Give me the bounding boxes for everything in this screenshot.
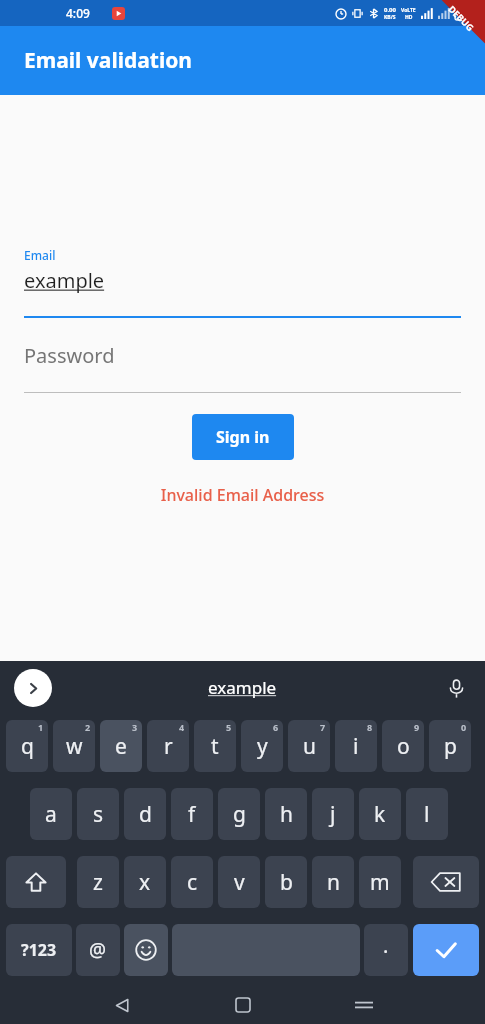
staticText: e (115, 732, 127, 761)
button[interactable]: h (265, 788, 307, 840)
button[interactable]: . (364, 924, 408, 976)
staticText: . (383, 932, 389, 959)
button[interactable]: o (382, 720, 424, 772)
button[interactable]: Emoji (124, 924, 168, 976)
staticText: 0.00 (384, 6, 396, 14)
staticText: Invalid Email Address (0, 484, 485, 506)
staticText: 9 (414, 721, 420, 733)
staticText: 2 (85, 721, 91, 733)
staticText: j (330, 800, 336, 829)
button[interactable]: r (147, 720, 189, 772)
staticText: g (233, 800, 246, 829)
staticText: HD (405, 14, 413, 21)
button[interactable]: u (288, 720, 330, 772)
staticText: k (374, 800, 386, 829)
staticText: 7 (320, 721, 326, 733)
staticText: n (327, 868, 340, 897)
staticText: 6 (273, 721, 279, 733)
button[interactable]: Home (226, 988, 260, 1022)
staticText: DEBUG (446, 3, 477, 33)
staticText: o (397, 732, 410, 761)
staticText: m (370, 868, 390, 897)
button[interactable]: Email (24, 247, 461, 318)
button[interactable]: Recents (347, 988, 381, 1022)
staticText: i (353, 732, 359, 761)
button[interactable]: Enter (413, 924, 479, 976)
staticText: example (24, 267, 105, 294)
button[interactable]: z (77, 856, 119, 908)
staticText: Sign in (216, 426, 270, 448)
button[interactable]: g (218, 788, 260, 840)
staticText: p (444, 732, 457, 761)
button[interactable]: ?123 (6, 924, 72, 976)
staticText: y (257, 732, 268, 761)
staticText: ?123 (21, 939, 57, 961)
staticText: 100 (460, 9, 473, 19)
button[interactable]: b (265, 856, 307, 908)
staticText: s (93, 800, 104, 829)
staticText: v (234, 868, 245, 897)
button[interactable]: j (312, 788, 354, 840)
staticText: a (45, 800, 57, 829)
staticText: t (211, 732, 219, 761)
button[interactable]: q (6, 720, 48, 772)
button[interactable]: Password (24, 342, 461, 393)
button[interactable]: example (208, 676, 277, 699)
button[interactable]: x (124, 856, 166, 908)
button[interactable]: @ (76, 924, 120, 976)
staticText: @ (89, 937, 107, 963)
staticText: l (424, 800, 430, 829)
staticText: h (280, 800, 293, 829)
staticText: z (93, 868, 103, 897)
staticText: example (208, 676, 277, 699)
button[interactable]: m (359, 856, 401, 908)
button[interactable]: Back (105, 988, 139, 1022)
button[interactable]: Email validation (0, 26, 485, 95)
button[interactable]: a (30, 788, 72, 840)
staticText: x (139, 868, 151, 897)
staticText: d (139, 800, 152, 829)
button[interactable]: i (335, 720, 377, 772)
button[interactable]: k (359, 788, 401, 840)
staticText: 5 (226, 721, 232, 733)
button[interactable]: w (53, 720, 95, 772)
staticText: 4 (179, 721, 185, 733)
button[interactable]: n (312, 856, 354, 908)
button[interactable]: Shift (6, 856, 66, 908)
staticText: KB/S (384, 14, 396, 21)
staticText: u (303, 732, 316, 761)
button[interactable]: y (241, 720, 283, 772)
button[interactable]: f (171, 788, 213, 840)
button[interactable]: More suggestions (14, 669, 52, 707)
staticText: VoLTE (401, 7, 416, 14)
button[interactable]: e (100, 720, 142, 772)
button[interactable]: Backspace (413, 856, 479, 908)
staticText: 4:09 (66, 5, 90, 21)
button[interactable]: s (77, 788, 119, 840)
staticText: q (21, 732, 34, 761)
button[interactable]: l (406, 788, 448, 840)
button[interactable]: t (194, 720, 236, 772)
staticText: f (188, 800, 196, 829)
staticText: r (164, 732, 173, 761)
staticText: Email (24, 247, 56, 263)
staticText: c (187, 868, 198, 897)
button[interactable]: Sign in (192, 414, 294, 460)
button[interactable]: p (429, 720, 471, 772)
staticText: Email validation (24, 46, 192, 75)
button[interactable]: Voice input (441, 673, 471, 703)
staticText: 3 (132, 721, 138, 733)
staticText: 8 (367, 721, 373, 733)
button[interactable]: c (171, 856, 213, 908)
staticText: 0 (461, 721, 467, 733)
button[interactable]: v (218, 856, 260, 908)
staticText: Password (24, 342, 115, 369)
staticText: 1 (38, 721, 44, 733)
staticText: b (280, 868, 293, 897)
staticText: w (66, 732, 83, 761)
button[interactable]: d (124, 788, 166, 840)
